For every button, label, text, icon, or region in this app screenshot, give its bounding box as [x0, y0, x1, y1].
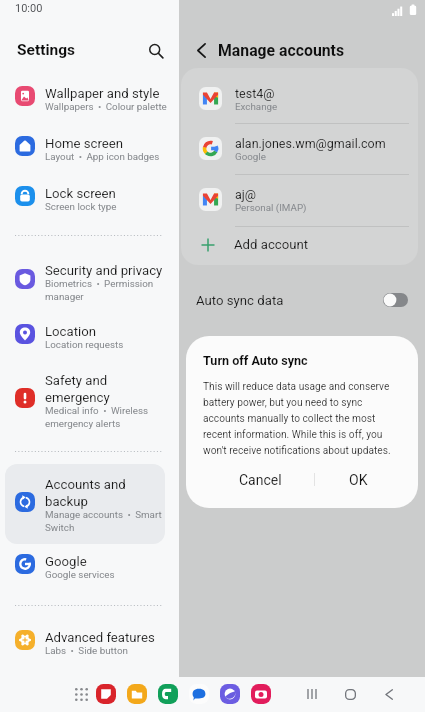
button[interactable]	[181, 123, 418, 174]
button[interactable]: Back	[187, 36, 215, 64]
button[interactable]	[5, 373, 165, 423]
staticText: Google	[235, 151, 266, 162]
staticText: Manage accounts • Smart Switch	[45, 509, 167, 533]
staticText: Wallpaper and style	[45, 86, 160, 101]
staticText: Medical info • Wireless emergency alerts	[45, 405, 167, 429]
staticText: Wallpapers • Colour palette	[45, 101, 167, 112]
button[interactable]: Home	[338, 682, 362, 706]
button[interactable]	[5, 71, 165, 121]
staticText: Exchange	[235, 101, 278, 112]
staticText: Lock screen	[45, 186, 116, 201]
button[interactable]: Recents	[300, 682, 324, 706]
staticText: Personal (IMAP)	[235, 202, 307, 213]
button[interactable]: Search	[143, 38, 169, 64]
button[interactable]	[181, 174, 418, 225]
staticText: Add account	[234, 237, 309, 252]
button[interactable]	[5, 464, 165, 544]
staticText: Auto sync data	[196, 293, 284, 308]
button[interactable]: Internet	[220, 684, 240, 704]
button[interactable]: Auto sync data	[181, 280, 420, 320]
button[interactable]: Messages	[189, 684, 209, 704]
button[interactable]	[5, 615, 165, 665]
staticText: Home screen	[45, 136, 124, 151]
staticText: Location requests	[45, 339, 124, 350]
staticText: Settings	[17, 41, 76, 59]
staticText: Safety and emergency	[45, 373, 167, 405]
button[interactable]: OK	[315, 461, 401, 499]
staticText: Manage accounts	[218, 41, 345, 60]
staticText: This will reduce data usage and conserve…	[203, 381, 395, 457]
button[interactable]: Notes	[96, 684, 116, 704]
button[interactable]	[5, 254, 165, 304]
staticText: Layout • App icon badges	[45, 151, 160, 162]
staticText: Advanced features	[45, 630, 155, 645]
staticText: Turn off Auto sync	[203, 353, 308, 368]
button[interactable]: Cancel	[201, 461, 319, 499]
button[interactable]	[5, 121, 165, 171]
staticText: Location	[45, 324, 97, 339]
staticText: Security and privacy	[45, 263, 163, 278]
staticText: Cancel	[239, 472, 282, 488]
staticText: OK	[349, 472, 368, 488]
staticText: Biometrics • Permission manager	[45, 278, 167, 302]
button[interactable]	[5, 309, 165, 359]
button[interactable]: Back	[377, 682, 401, 706]
button[interactable]	[5, 539, 165, 589]
staticText: Labs • Side button	[45, 645, 128, 656]
button[interactable]: Apps	[71, 684, 91, 704]
button[interactable]	[181, 73, 418, 124]
button[interactable]	[5, 171, 165, 221]
staticText: test4@	[235, 86, 275, 101]
staticText: 10:00	[15, 2, 43, 15]
button[interactable]	[5, 477, 165, 527]
staticText: aj@	[235, 187, 257, 202]
button[interactable]: Phone	[158, 684, 178, 704]
staticText: Accounts and backup	[45, 477, 167, 509]
staticText: Screen lock type	[45, 201, 117, 212]
staticText: Google	[45, 554, 87, 569]
button[interactable]: Camera	[251, 684, 271, 704]
button[interactable]: My Files	[127, 684, 147, 704]
staticText: alan.jones.wm@gmail.com	[235, 136, 386, 151]
button[interactable]	[181, 226, 418, 264]
staticText: Google services	[45, 569, 115, 580]
